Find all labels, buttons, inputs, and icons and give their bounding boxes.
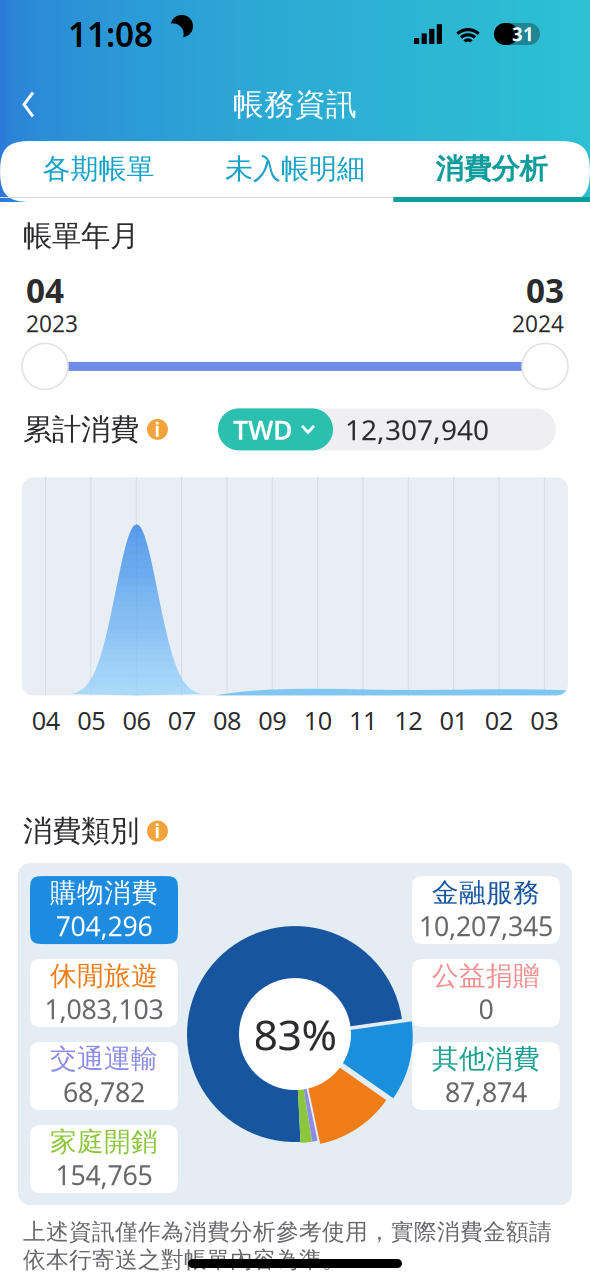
- staticText: 12: [394, 703, 422, 737]
- button[interactable]: 各期帳單: [0, 141, 197, 202]
- staticText: 休閒旅遊: [50, 959, 158, 992]
- staticText: TWD: [233, 412, 293, 447]
- button[interactable]: 其他消費: [412, 1042, 560, 1110]
- staticText: 金融服務: [432, 876, 540, 909]
- staticText: 02: [485, 703, 513, 737]
- staticText: 704,296: [55, 908, 152, 944]
- staticText: 11: [349, 703, 377, 737]
- staticText: 0: [478, 991, 493, 1027]
- staticText: 購物消費: [50, 876, 158, 909]
- staticText: 04: [26, 268, 64, 312]
- staticText: i: [154, 819, 160, 843]
- button[interactable]: Back: [16, 82, 60, 126]
- staticText: 05: [77, 703, 105, 737]
- staticText: 06: [122, 703, 150, 737]
- button[interactable]: TWD: [218, 408, 333, 450]
- staticText: 上述資訊僅作為消費分析參考使用，實際消費金額請依本行寄送之對帳單內容為準。: [23, 1218, 552, 1274]
- staticText: 01: [440, 703, 468, 737]
- button[interactable]: 公益捐贈: [412, 959, 560, 1027]
- staticText: 10,207,345: [419, 908, 553, 944]
- staticText: 消費類別: [23, 813, 139, 849]
- staticText: 消費分析: [436, 152, 548, 186]
- staticText: 31: [512, 22, 534, 46]
- staticText: 交通運輸: [50, 1042, 158, 1075]
- staticText: 1,083,103: [44, 991, 163, 1027]
- staticText: 家庭開銷: [50, 1125, 158, 1158]
- staticText: 公益捐贈: [432, 959, 540, 992]
- staticText: i: [154, 417, 160, 442]
- staticText: 11:08: [68, 12, 153, 56]
- staticText: 03: [526, 268, 564, 312]
- staticText: 各期帳單: [42, 152, 154, 186]
- staticText: 03: [530, 703, 558, 737]
- staticText: 2024: [512, 308, 564, 338]
- button[interactable]: 購物消費: [30, 876, 178, 944]
- staticText: 83%: [253, 1006, 336, 1062]
- button[interactable]: 交通運輸: [30, 1042, 178, 1110]
- staticText: 其他消費: [432, 1042, 540, 1075]
- staticText: 154,765: [55, 1157, 152, 1193]
- staticText: 08: [213, 703, 241, 737]
- button[interactable]: 消費分析: [393, 141, 590, 202]
- staticText: 04: [32, 703, 60, 737]
- staticText: 帳單年月: [23, 218, 139, 254]
- button[interactable]: 休閒旅遊: [30, 959, 178, 1027]
- staticText: 68,782: [63, 1074, 145, 1110]
- staticText: 07: [168, 703, 196, 737]
- staticText: 12,307,940: [345, 411, 489, 448]
- staticText: 09: [258, 703, 286, 737]
- staticText: 87,874: [445, 1074, 527, 1110]
- staticText: 2023: [26, 308, 78, 338]
- button[interactable]: 金融服務: [412, 876, 560, 944]
- staticText: 10: [304, 703, 332, 737]
- staticText: 累計消費: [23, 411, 139, 447]
- staticText: 未入帳明細: [225, 152, 365, 186]
- staticText: 帳務資訊: [233, 86, 357, 123]
- button[interactable]: 家庭開銷: [30, 1125, 178, 1193]
- button[interactable]: 未入帳明細: [197, 141, 393, 202]
